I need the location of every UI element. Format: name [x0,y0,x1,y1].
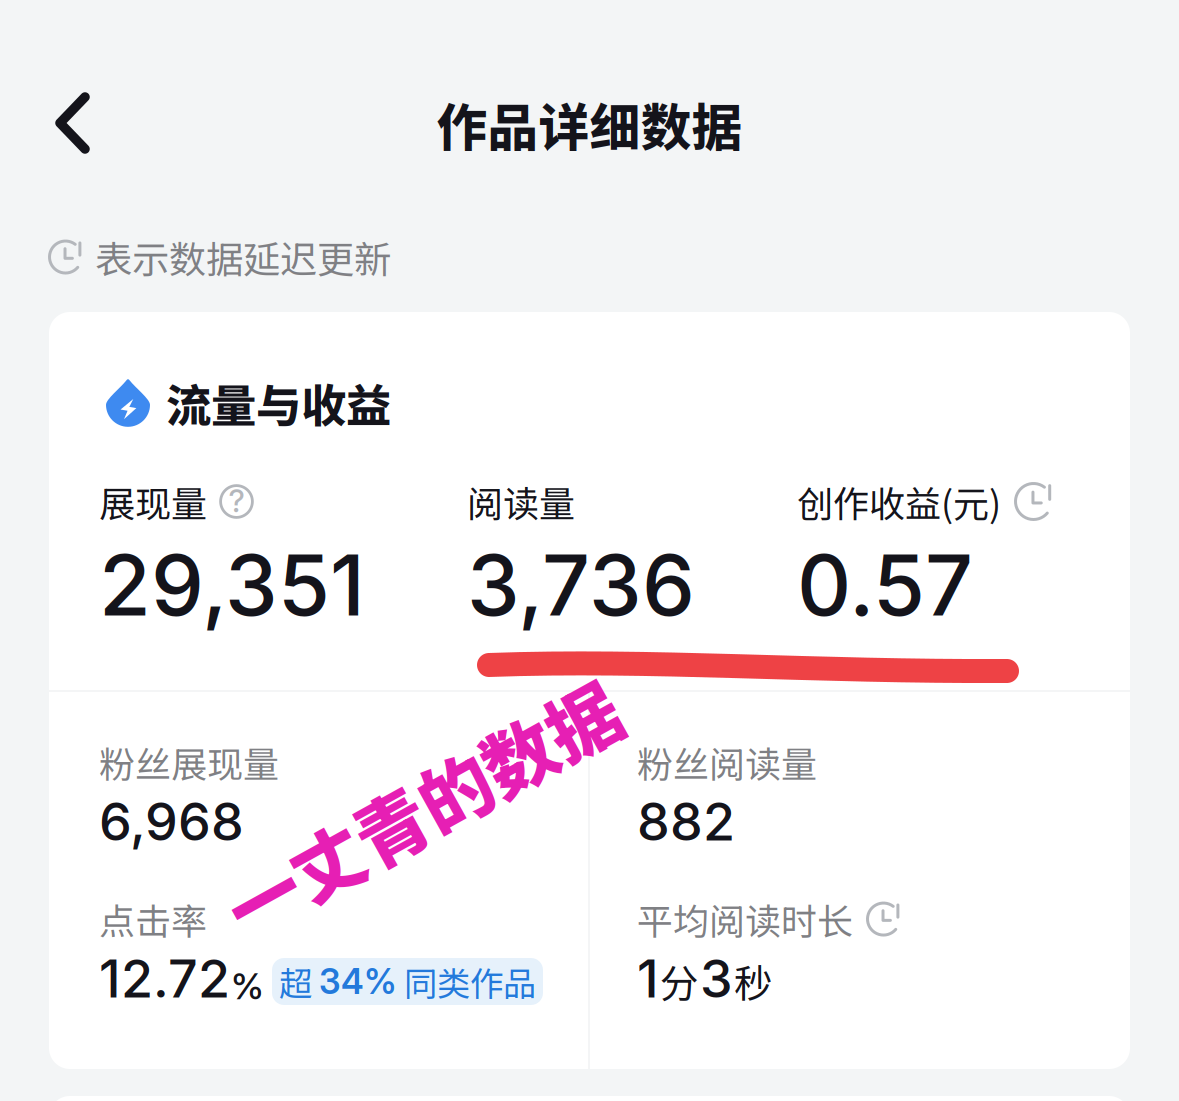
staticText: 平均阅读时长 [637,893,853,945]
staticText: 同类作品 [397,957,536,1006]
staticText: 超 [279,957,319,1006]
button[interactable]: 返回 [27,75,119,171]
staticText: 34% [319,960,397,1002]
staticText: 秒 [734,953,773,1009]
staticText: 一丈青的数据 [203,754,641,860]
staticText: 流量与收益 [166,370,391,436]
staticText: 29,351 [99,534,365,636]
staticText: 粉丝阅读量 [637,736,817,788]
staticText: 3,736 [467,534,695,636]
staticText: 表示数据延迟更新 [95,230,391,284]
staticText: 创作收益(元) [797,475,1001,527]
staticText: 作品详细数据 [436,87,742,161]
staticText: 阅读量 [467,475,575,527]
staticText: 分 [660,953,699,1009]
staticText: 点击率 [99,893,207,945]
staticText: 粉丝展现量 [99,736,279,788]
staticText: 6,968 [99,790,244,853]
button[interactable]: 展现量说明 [219,484,254,519]
staticText: ? [228,482,244,519]
staticText: 展现量 [99,475,207,527]
staticText: 12.72 [99,947,230,1010]
staticText: 882 [637,790,735,853]
staticText: % [231,964,264,1008]
staticText: 1 [637,947,659,1010]
staticText: 0.57 [797,534,973,636]
staticText: 3 [700,947,733,1010]
